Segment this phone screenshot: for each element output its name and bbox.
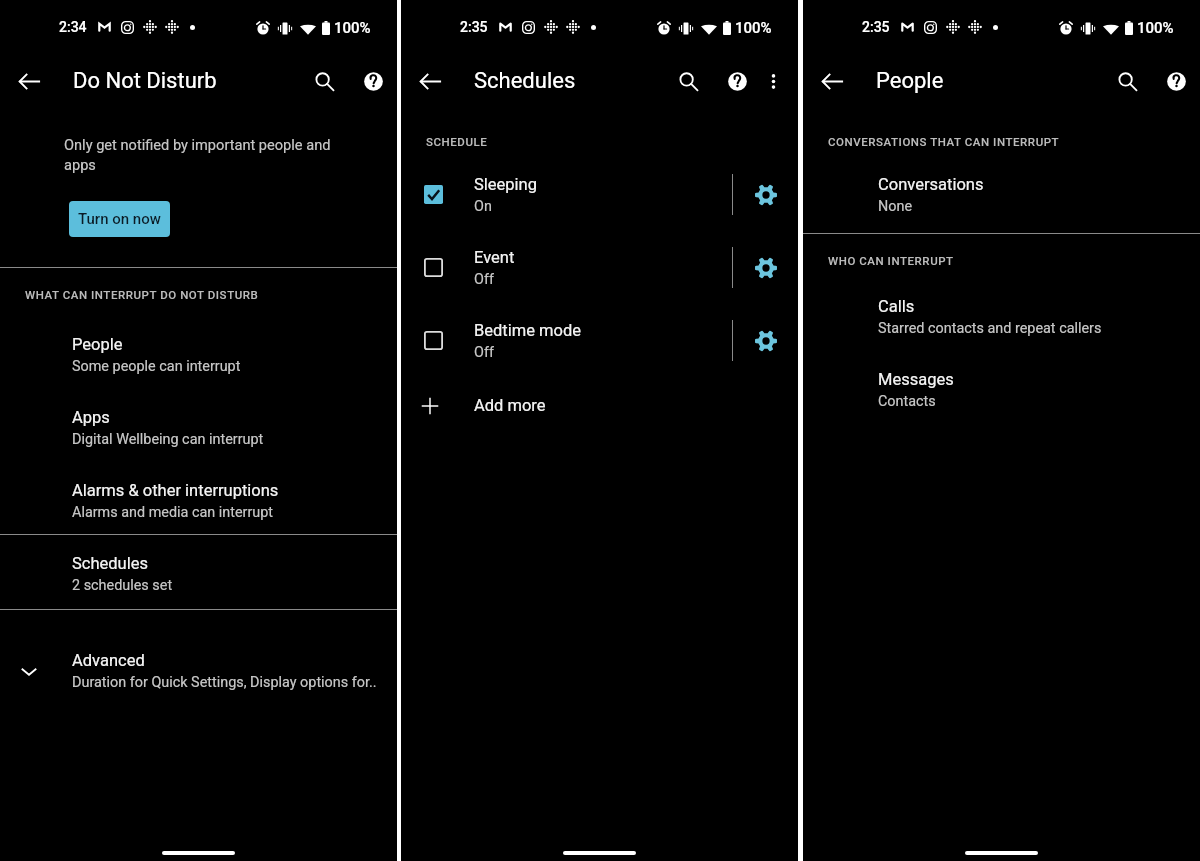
- staticText: CONVERSATIONS THAT CAN INTERRUPT: [828, 135, 1060, 148]
- staticText: Off: [474, 344, 494, 361]
- staticText: Schedules: [474, 68, 576, 94]
- button[interactable]: Search: [668, 61, 708, 101]
- button[interactable]: Navigate up: [10, 62, 48, 100]
- staticText: Turn on now: [78, 210, 161, 228]
- staticText: Bedtime mode: [474, 321, 581, 340]
- staticText: Off: [474, 271, 494, 288]
- staticText: Contacts: [878, 393, 936, 410]
- staticText: SCHEDULE: [426, 135, 488, 148]
- button[interactable]: Apps: [0, 408, 397, 448]
- staticText: On: [474, 198, 492, 215]
- staticText: 100%: [334, 19, 371, 37]
- staticText: Apps: [72, 408, 110, 427]
- staticText: WHO CAN INTERRUPT: [828, 254, 954, 267]
- staticText: Event: [474, 248, 515, 267]
- button[interactable]: Schedules: [0, 554, 397, 594]
- button[interactable]: Search: [304, 61, 344, 101]
- staticText: None: [878, 198, 913, 215]
- button[interactable]: Settings for Sleeping: [733, 158, 798, 231]
- staticText: Sleeping: [474, 175, 537, 194]
- button[interactable]: Settings for Event: [733, 231, 798, 304]
- button[interactable]: Calls: [803, 297, 1200, 337]
- staticText: 2 schedules set: [72, 577, 173, 594]
- button[interactable]: Settings for Bedtime mode: [733, 304, 798, 377]
- button[interactable]: Help: [353, 61, 393, 101]
- staticText: Do Not Disturb: [73, 68, 217, 94]
- staticText: WHAT CAN INTERRUPT DO NOT DISTURB: [25, 288, 259, 301]
- staticText: 2:35: [862, 19, 890, 35]
- staticText: 2:34: [59, 19, 87, 35]
- button[interactable]: Conversations: [803, 175, 1200, 215]
- button[interactable]: Add more: [401, 377, 798, 434]
- button[interactable]: Navigate up: [411, 62, 449, 100]
- staticText: Calls: [878, 297, 915, 316]
- button[interactable]: Navigate up: [813, 62, 851, 100]
- button[interactable]: Alarms & other interruptions: [0, 481, 397, 521]
- button[interactable]: Event: [401, 231, 732, 304]
- staticText: Schedules: [72, 554, 148, 573]
- button[interactable]: More options: [757, 65, 790, 98]
- staticText: Digital Wellbeing can interrupt: [72, 431, 264, 448]
- staticText: 100%: [1137, 19, 1174, 37]
- button[interactable]: Help: [1156, 61, 1196, 101]
- button[interactable]: Advanced: [0, 651, 397, 691]
- button[interactable]: People: [0, 335, 397, 375]
- button[interactable]: Messages: [803, 370, 1200, 410]
- staticText: People: [876, 68, 944, 94]
- button[interactable]: Turn on now: [69, 201, 170, 237]
- button[interactable]: Help: [717, 61, 757, 101]
- staticText: 100%: [735, 19, 772, 37]
- staticText: Advanced: [72, 651, 145, 670]
- staticText: Alarms and media can interrupt: [72, 504, 274, 521]
- staticText: Only get notified by important people an…: [64, 136, 331, 173]
- staticText: Messages: [878, 370, 954, 389]
- button[interactable]: Search: [1107, 61, 1147, 101]
- staticText: Starred contacts and repeat callers: [878, 320, 1102, 337]
- staticText: Conversations: [878, 175, 984, 194]
- staticText: People: [72, 335, 123, 354]
- staticText: Duration for Quick Settings, Display opt…: [72, 674, 377, 691]
- staticText: Alarms & other interruptions: [72, 481, 279, 500]
- staticText: Add more: [474, 396, 546, 415]
- staticText: Some people can interrupt: [72, 358, 241, 375]
- staticText: 2:35: [460, 19, 488, 35]
- button[interactable]: Bedtime mode: [401, 304, 732, 377]
- button[interactable]: Sleeping: [401, 158, 732, 231]
